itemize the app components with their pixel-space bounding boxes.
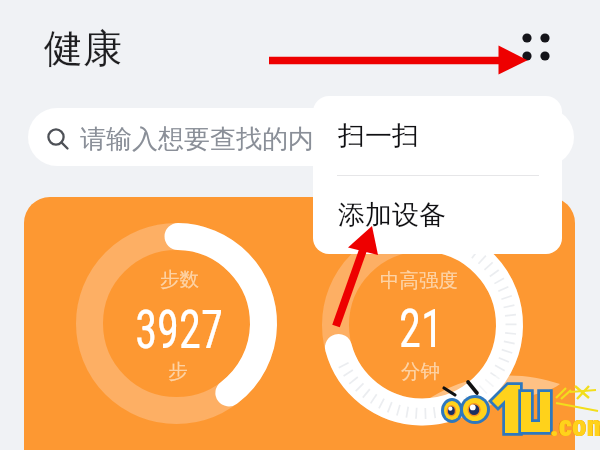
staticText: 3927 [113,298,245,361]
staticText: .com [550,409,600,443]
staticText: 步数 [160,267,199,292]
staticText: 添加设备 [338,198,446,232]
staticText: 中高强度 [380,268,458,293]
staticText: 21 [355,297,487,360]
staticText: .com [549,408,600,443]
staticText: 分钟 [401,359,440,384]
button[interactable]: 添加设备 [313,176,562,254]
staticText: 健康 [44,24,122,73]
button[interactable]: 请输入想要查找的内容 [28,108,574,166]
staticText: 步 [168,359,188,384]
staticText: 请输入想要查找的内容 [80,123,340,156]
button[interactable]: 扫一扫 [313,96,562,176]
staticText: 扫一扫 [338,119,419,153]
button[interactable]: More options [511,22,561,72]
